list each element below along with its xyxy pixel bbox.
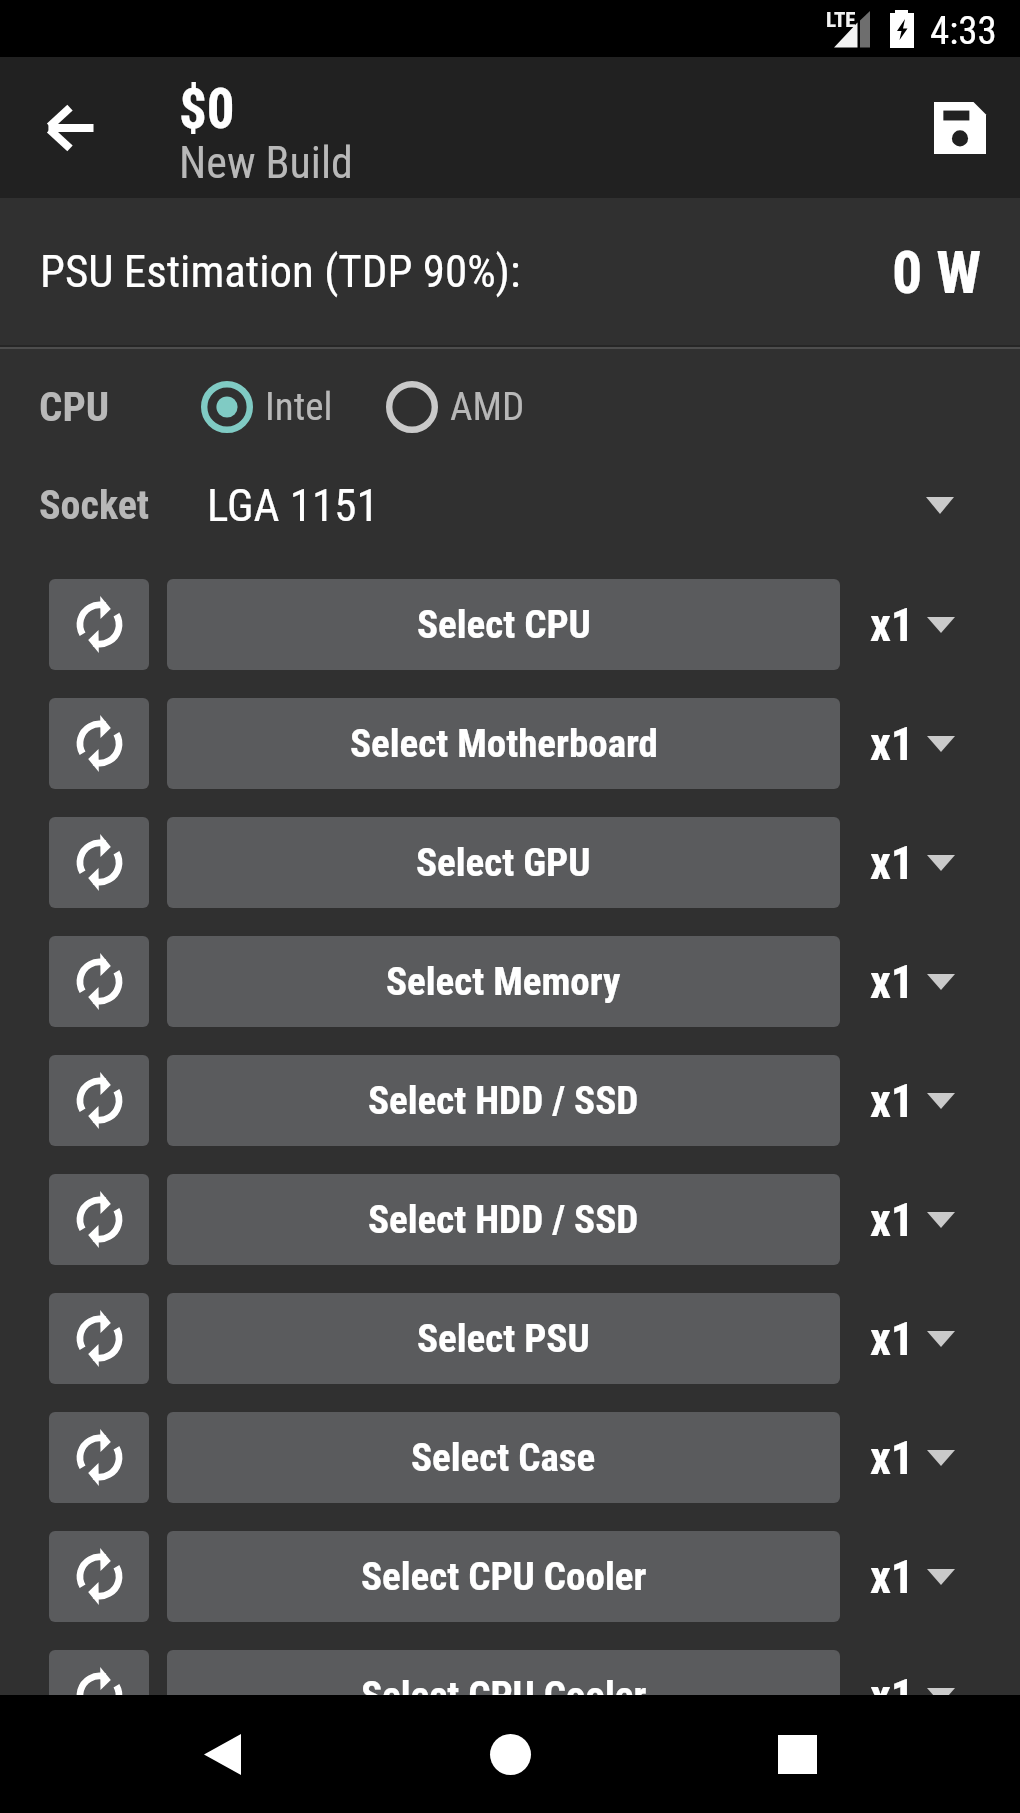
staticText: 4:33	[930, 8, 997, 54]
button[interactable]: Intel	[199, 371, 333, 443]
button[interactable]: Socket	[0, 464, 1020, 547]
staticText: Select PSU	[417, 1316, 590, 1362]
staticText: PSU Estimation (TDP 90%):	[40, 245, 521, 298]
staticText: x1	[870, 598, 915, 652]
staticText: Select Motherboard	[350, 721, 658, 767]
button[interactable]: Reset Select PSU	[49, 1293, 149, 1384]
staticText: Select Case	[411, 1435, 596, 1481]
button[interactable]: x1	[870, 1431, 955, 1485]
staticText: x1	[870, 1193, 915, 1247]
staticText: AMD	[450, 384, 525, 430]
button[interactable]: Reset Select CPU	[49, 579, 149, 670]
button[interactable]: Reset Select HDD / SSD	[49, 1055, 149, 1146]
button[interactable]: Reset Select HDD / SSD	[49, 1174, 149, 1265]
staticText: x1	[870, 1669, 915, 1723]
staticText: 0 W	[892, 237, 982, 307]
staticText: Socket	[39, 482, 150, 529]
button[interactable]: Select CPU Cooler	[167, 1531, 840, 1622]
button[interactable]: Navigate up	[26, 84, 114, 172]
button[interactable]: x1	[870, 717, 955, 771]
button[interactable]: Reset Select CPU Cooler	[49, 1531, 149, 1622]
button[interactable]: Select PSU	[167, 1293, 840, 1384]
staticText: LGA 1151	[207, 479, 379, 532]
button[interactable]: Select CPU	[167, 579, 840, 670]
button[interactable]: Select HDD / SSD	[167, 1174, 840, 1265]
button[interactable]: Home	[450, 1695, 570, 1813]
button[interactable]: x1	[870, 955, 955, 1009]
button[interactable]: Back	[162, 1695, 282, 1813]
button[interactable]: Select Case	[167, 1412, 840, 1503]
button[interactable]: Select Motherboard	[167, 698, 840, 789]
button[interactable]: AMD	[384, 371, 525, 443]
staticText: Select Memory	[386, 959, 621, 1005]
button[interactable]: Reset Select Case	[49, 1412, 149, 1503]
button[interactable]: x1	[870, 598, 955, 652]
button[interactable]: Select GPU	[167, 817, 840, 908]
staticText: Select GPU	[416, 840, 591, 886]
staticText: CPU	[39, 383, 110, 431]
button[interactable]: x1	[870, 1550, 955, 1604]
button[interactable]: x1	[870, 1312, 955, 1366]
button[interactable]: x1	[870, 1074, 955, 1128]
button[interactable]: Save	[916, 84, 1004, 172]
button[interactable]: Select CPU Cooler	[167, 1650, 840, 1741]
staticText: Select HDD / SSD	[368, 1197, 639, 1243]
button[interactable]: Reset Select GPU	[49, 817, 149, 908]
button[interactable]: Recent apps	[737, 1695, 857, 1813]
staticText: Select CPU Cooler	[361, 1673, 647, 1719]
staticText: New Build	[179, 137, 353, 189]
staticText: Select CPU Cooler	[361, 1554, 647, 1600]
staticText: x1	[870, 1074, 915, 1128]
staticText: LTE	[826, 8, 856, 33]
button[interactable]: x1	[870, 1193, 955, 1247]
button[interactable]: Reset Select Memory	[49, 936, 149, 1027]
staticText: x1	[870, 1312, 915, 1366]
button[interactable]: x1	[870, 836, 955, 890]
button[interactable]: Select Memory	[167, 936, 840, 1027]
staticText: x1	[870, 717, 915, 771]
staticText: $0	[179, 77, 235, 141]
button[interactable]: Select HDD / SSD	[167, 1055, 840, 1146]
button[interactable]: Reset Select CPU Cooler	[49, 1650, 149, 1741]
staticText: x1	[870, 1550, 915, 1604]
button[interactable]: x1	[870, 1669, 955, 1723]
button[interactable]: Reset Select Motherboard	[49, 698, 149, 789]
staticText: x1	[870, 955, 915, 1009]
staticText: x1	[870, 836, 915, 890]
staticText: Select CPU	[417, 602, 591, 648]
staticText: Intel	[265, 384, 333, 430]
staticText: Select HDD / SSD	[368, 1078, 639, 1124]
staticText: x1	[870, 1431, 915, 1485]
